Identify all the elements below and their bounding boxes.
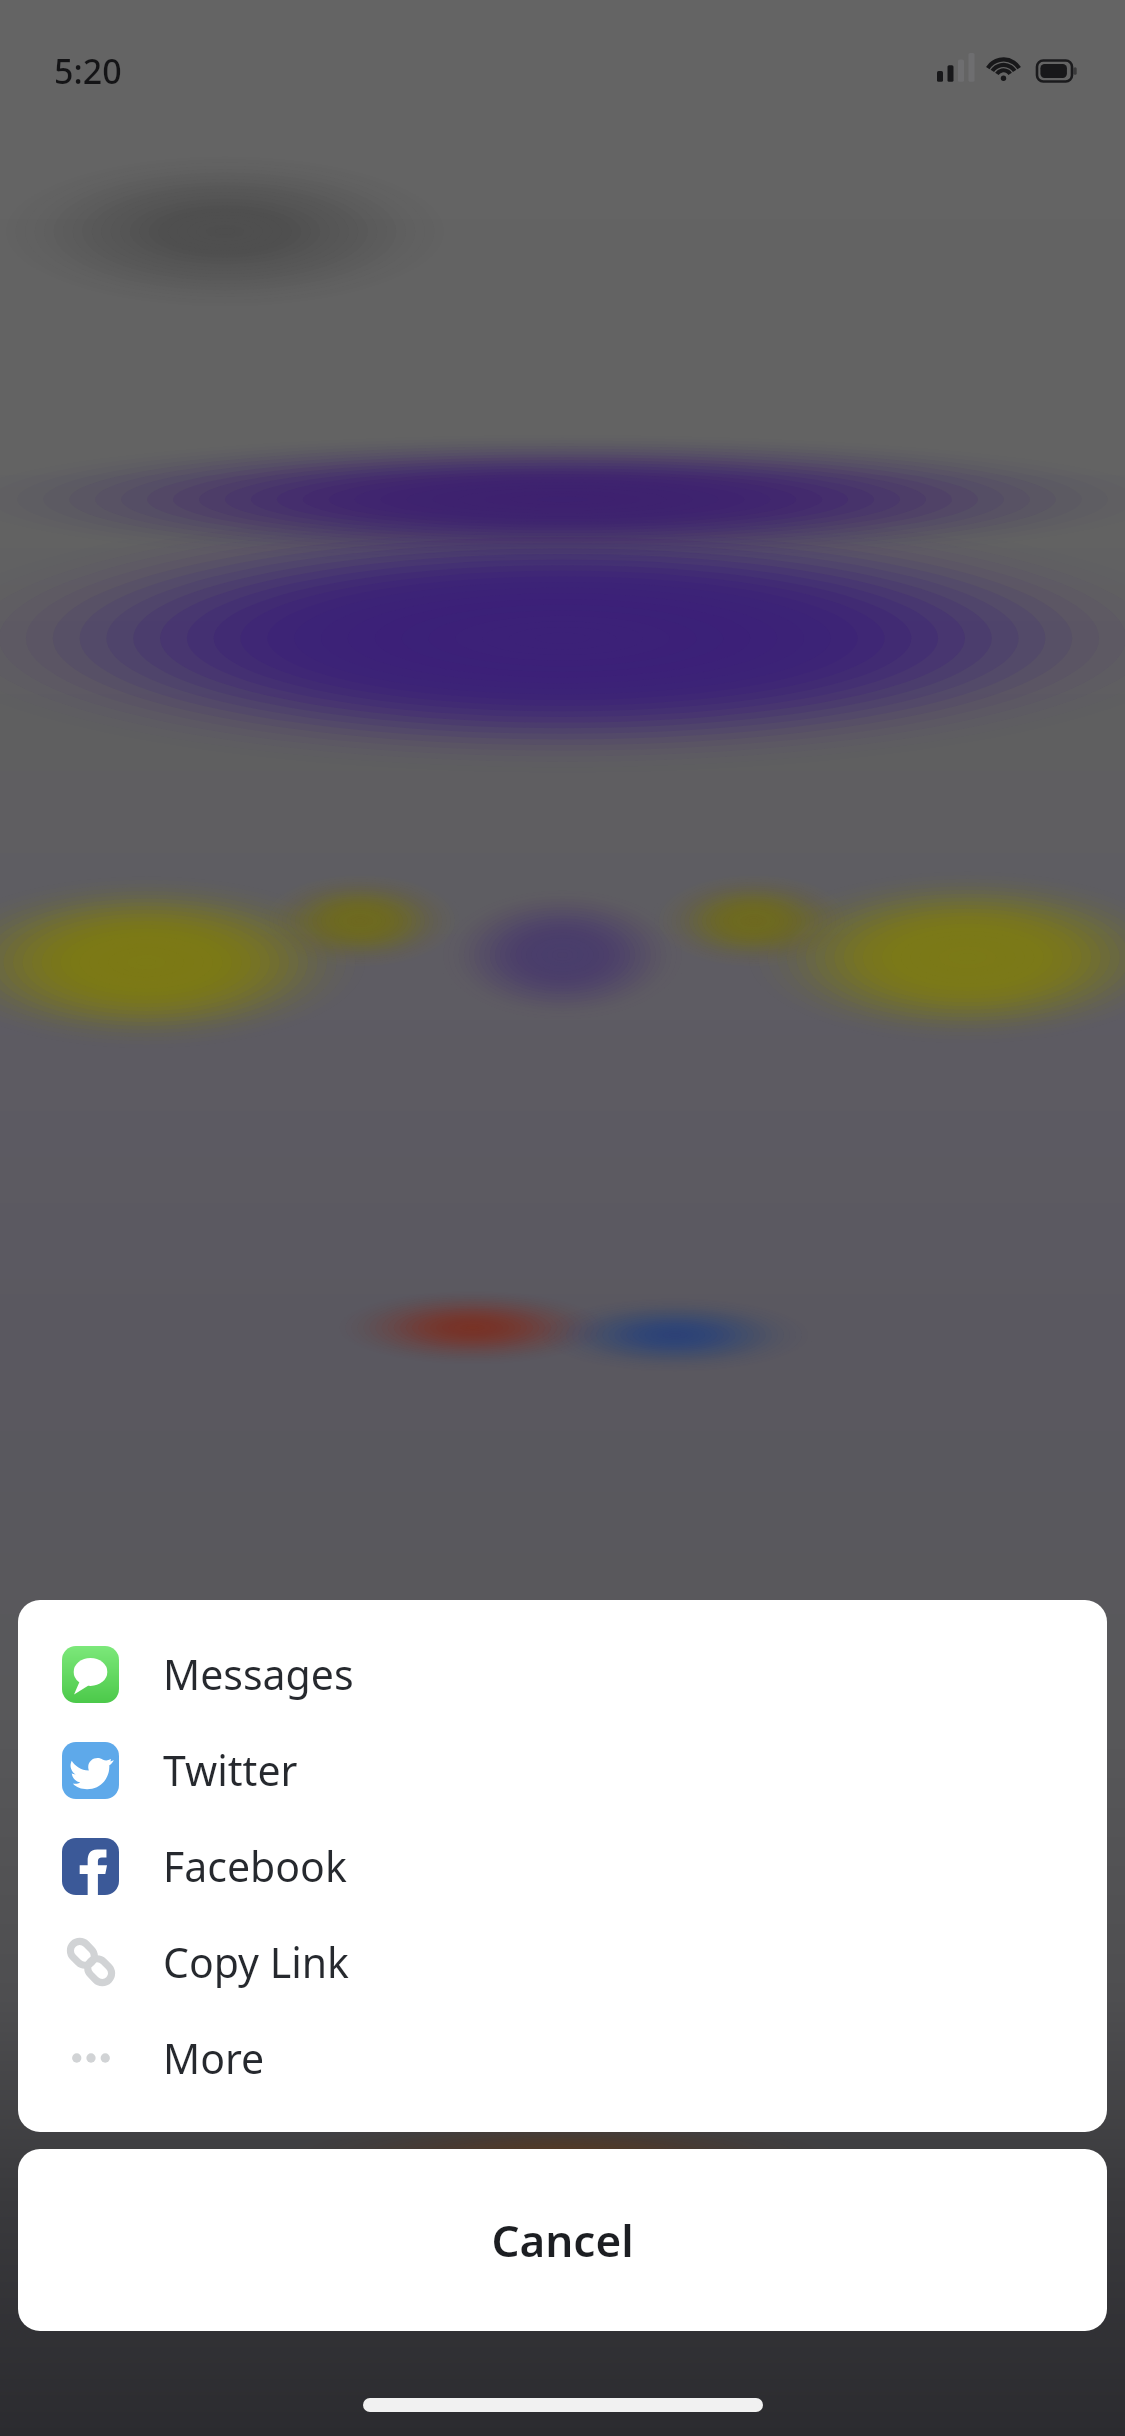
staticText: Copy Link	[163, 1934, 349, 1990]
button[interactable]: Facebook	[18, 1818, 1107, 1914]
button[interactable]: More	[18, 2010, 1107, 2106]
other: More	[60, 2027, 122, 2089]
staticText: More	[163, 2030, 265, 2086]
staticText: 5:20	[54, 48, 122, 94]
staticText: Twitter	[163, 1742, 298, 1798]
staticText: Facebook	[163, 1838, 347, 1894]
staticText: Cancel	[491, 2210, 634, 2270]
button[interactable]: Cancel	[18, 2149, 1107, 2331]
button[interactable]: Twitter	[18, 1722, 1107, 1818]
staticText: Messages	[163, 1646, 354, 1702]
button[interactable]: Messages	[18, 1626, 1107, 1722]
button[interactable]: Copy Link	[18, 1914, 1107, 2010]
